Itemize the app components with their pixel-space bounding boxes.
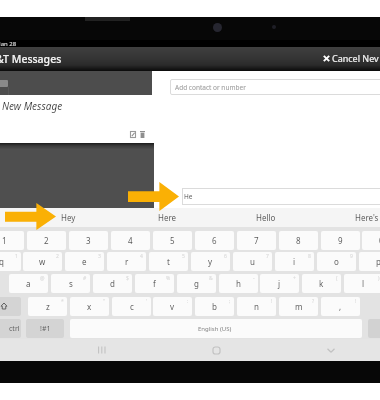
staticText: i	[293, 256, 296, 267]
staticText: b	[212, 301, 217, 312]
staticText: He	[184, 192, 193, 201]
button[interactable]: c	[112, 297, 151, 316]
button[interactable]: ctrl	[0, 319, 21, 338]
staticText: 0	[379, 235, 380, 246]
staticText: +	[293, 275, 296, 282]
button[interactable]: l	[344, 274, 380, 293]
button[interactable]: f	[135, 274, 174, 293]
button[interactable]: v	[153, 297, 192, 316]
button[interactable]: z	[28, 297, 67, 316]
button[interactable]: j	[260, 274, 299, 293]
staticText: 6	[224, 253, 227, 260]
button[interactable]: Hello	[218, 208, 314, 227]
button[interactable]: e	[65, 252, 104, 271]
button[interactable]: Cancel New Message	[323, 52, 379, 64]
button[interactable]: n	[237, 297, 276, 316]
staticText: !	[355, 298, 357, 305]
button[interactable]: d	[93, 274, 132, 293]
button[interactable]: p	[359, 252, 380, 271]
button[interactable]: k	[302, 274, 341, 293]
staticText: t	[167, 256, 170, 267]
staticText: q	[0, 256, 4, 267]
staticText: Hello	[256, 212, 276, 223]
staticText: f	[153, 278, 156, 289]
staticText: 5	[182, 253, 185, 260]
staticText: Here	[158, 212, 177, 223]
button[interactable]	[0, 297, 21, 316]
staticText: ;	[229, 298, 231, 305]
button[interactable]: t	[149, 252, 188, 271]
button[interactable]: Hide keyboard	[320, 339, 342, 361]
staticText: 5	[170, 235, 175, 246]
staticText: o	[334, 256, 339, 267]
button[interactable]: Here	[119, 208, 215, 227]
staticText: s	[69, 278, 73, 289]
staticText: w	[39, 256, 46, 267]
staticText: !#1	[40, 324, 51, 334]
button[interactable]: ,	[321, 297, 360, 316]
button[interactable]: Edit	[130, 131, 136, 138]
button[interactable]: !#1	[26, 319, 64, 338]
button[interactable]: Add contact or number	[170, 79, 380, 95]
staticText: ?	[312, 298, 315, 305]
button[interactable]: 6	[195, 231, 234, 250]
staticText: !	[271, 298, 273, 305]
button[interactable]: 1	[0, 231, 24, 250]
staticText: z	[46, 301, 50, 312]
button[interactable]: g	[177, 274, 216, 293]
staticText: 9	[350, 253, 353, 260]
staticText: &	[209, 275, 213, 282]
staticText: 1	[15, 253, 18, 260]
staticText: a	[26, 278, 31, 289]
button[interactable]: w	[23, 252, 62, 271]
button[interactable]: 4	[111, 231, 150, 250]
button[interactable]: r	[107, 252, 146, 271]
button[interactable]: He	[182, 188, 380, 205]
staticText: l	[362, 278, 365, 289]
staticText: c	[130, 301, 134, 312]
staticText: 8	[296, 235, 301, 246]
button[interactable]: i	[275, 252, 314, 271]
button[interactable]: 8	[279, 231, 318, 250]
staticText: j	[278, 278, 281, 289]
staticText: r	[125, 256, 129, 267]
staticText: &T Messages	[0, 52, 62, 66]
staticText: 7	[254, 235, 259, 246]
button[interactable]: u	[233, 252, 272, 271]
staticText: n	[254, 301, 259, 312]
button[interactable]: Recents	[91, 339, 113, 361]
staticText: 3	[98, 253, 101, 260]
staticText: *	[61, 298, 64, 305]
staticText: 9	[338, 235, 343, 246]
button[interactable]: s	[51, 274, 90, 293]
staticText: 4	[140, 253, 143, 260]
button[interactable]: Here's	[319, 208, 380, 227]
button[interactable]: 9	[321, 231, 360, 250]
button[interactable]: 7	[237, 231, 276, 250]
button[interactable]: o	[317, 252, 356, 271]
button[interactable]: y	[191, 252, 230, 271]
button[interactable]: 5	[153, 231, 192, 250]
staticText: 7	[266, 253, 269, 260]
button[interactable]: Hey	[20, 208, 116, 227]
staticText: :	[187, 298, 189, 305]
button[interactable]: q	[0, 252, 21, 271]
button[interactable]: m	[279, 297, 318, 316]
button[interactable]: x	[70, 297, 109, 316]
button[interactable]: English (US)	[70, 319, 362, 338]
staticText: 2	[44, 235, 49, 246]
button[interactable]: 3	[69, 231, 108, 250]
staticText: k	[319, 278, 324, 289]
button[interactable]: Delete	[140, 131, 145, 138]
button[interactable]: h	[219, 274, 258, 293]
staticText: 3	[86, 235, 91, 246]
button[interactable]: a	[9, 274, 48, 293]
staticText: h	[236, 278, 241, 289]
staticText: "	[103, 298, 106, 305]
button[interactable]: 0	[362, 231, 380, 250]
button[interactable]: 2	[27, 231, 66, 250]
staticText: Jan 28	[0, 40, 17, 47]
button[interactable]: b	[195, 297, 234, 316]
button[interactable]: Home	[205, 339, 227, 361]
